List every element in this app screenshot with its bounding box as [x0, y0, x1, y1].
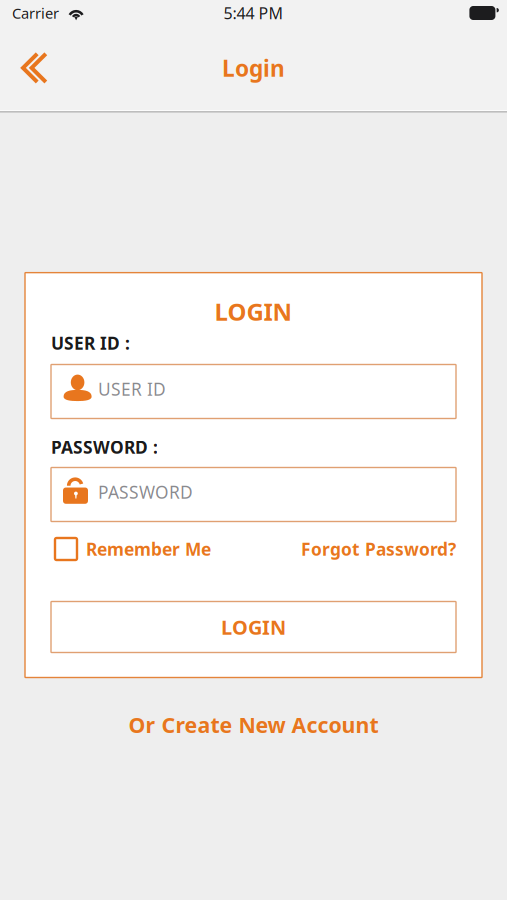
button[interactable]: Back: [0, 26, 68, 110]
button[interactable]: Forgot Password?: [301, 537, 456, 560]
staticText: Carrier: [12, 3, 59, 23]
staticText: USER ID :: [51, 331, 130, 354]
button[interactable]: LOGIN: [51, 601, 456, 652]
staticText: LOGIN: [214, 296, 292, 327]
staticText: Remember Me: [86, 537, 211, 560]
staticText: LOGIN: [221, 614, 286, 640]
staticText: USER ID: [98, 377, 166, 400]
staticText: 5:44 PM: [223, 2, 283, 24]
staticText: Forgot Password?: [301, 537, 456, 560]
staticText: PASSWORD :: [51, 435, 158, 458]
staticText: Login: [222, 53, 285, 83]
staticText: PASSWORD: [98, 480, 193, 503]
button[interactable]: Or Create New Account: [108, 677, 398, 749]
button[interactable]: Remember Me: [51, 537, 211, 560]
staticText: Or Create New Account: [128, 710, 378, 739]
